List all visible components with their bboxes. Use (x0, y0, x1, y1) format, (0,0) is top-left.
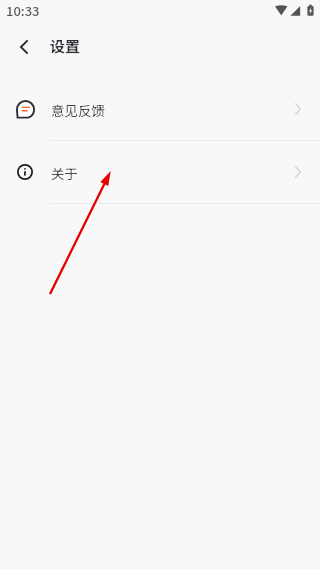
staticText: 10:33 (6, 1, 40, 20)
button[interactable]: 意见反馈 (0, 78, 320, 140)
button[interactable]: 关于 (0, 141, 320, 203)
staticText: 关于 (51, 163, 78, 183)
button[interactable]: Back (11, 34, 36, 59)
staticText: 意见反馈 (51, 100, 105, 120)
staticText: 设置 (50, 35, 81, 57)
